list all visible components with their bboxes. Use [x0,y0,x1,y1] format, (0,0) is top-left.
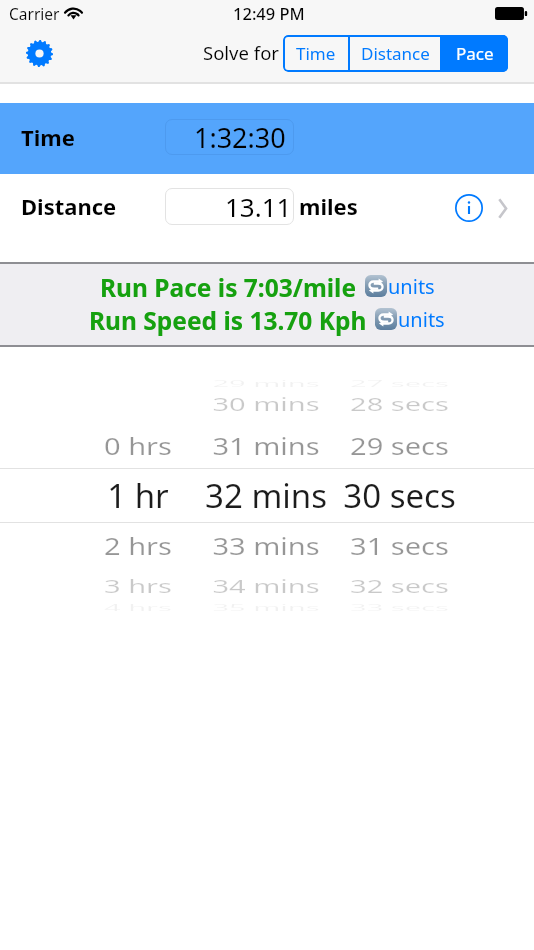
button[interactable]: Time [0,103,534,174]
button[interactable]: Distance [0,174,534,263]
staticText: units [398,306,445,333]
staticText: 1:32:30 [194,119,286,155]
staticText: 35 mins [212,601,320,613]
staticText: 33 mins [212,529,320,562]
staticText: 31 mins [212,429,320,462]
staticText: Run Pace is 7:03/mile [100,271,357,304]
staticText: 34 mins [212,574,320,598]
staticText: 0 hrs [104,429,172,462]
staticText: Run Speed is 13.70 Kph [89,304,367,337]
staticText: Pace [456,42,494,65]
staticText: miles [299,191,358,221]
button[interactable]: Time [283,35,348,72]
staticText: 1 hr [107,473,169,518]
staticText: 31 secs [350,529,449,562]
staticText: Distance [21,191,117,221]
staticText: Time [21,122,75,152]
staticText: 12:49 PM [233,2,305,24]
button[interactable]: Distance [350,35,440,72]
button[interactable]: Info [448,187,489,228]
staticText: Carrier [9,3,60,24]
staticText: 4 hrs [104,601,172,613]
staticText: Time [296,42,336,65]
staticText: 32 secs [350,574,449,598]
staticText: 13.11 [225,189,292,224]
button[interactable]: Settings [18,32,60,74]
staticText: 2 hrs [104,529,172,562]
staticText: 32 mins [205,473,327,518]
staticText: 30 mins [212,392,320,416]
staticText: 29 secs [350,429,449,462]
staticText: 30 secs [343,473,456,518]
staticText: units [388,273,435,300]
staticText: 33 secs [350,601,449,613]
staticText: Solve for [203,40,279,65]
staticText: Distance [361,42,430,65]
staticText: 29 mins [212,377,320,389]
staticText: 27 secs [350,377,449,389]
button[interactable]: Pace [442,35,508,72]
staticText: 3 hrs [104,574,172,598]
staticText: 28 secs [350,392,449,416]
